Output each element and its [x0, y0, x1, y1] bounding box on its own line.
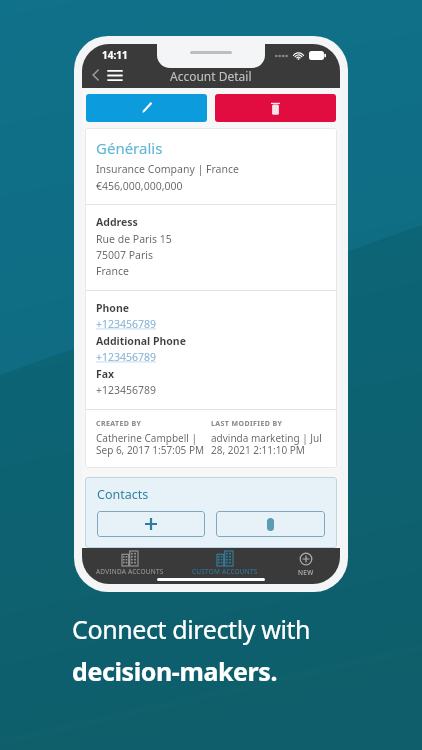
staticText: Account Detail [170, 68, 252, 84]
staticText: Connect directly with [72, 612, 311, 646]
staticText: €456,000,000,000 [96, 179, 183, 193]
staticText: advinda marketing | Jul 28, 2021 2:11:10… [211, 431, 326, 457]
button[interactable]: Add contact [97, 511, 205, 537]
staticText: CREATED BY [96, 419, 142, 429]
staticText: CUSTOM ACCOUNTS [192, 567, 258, 576]
staticText: +123456789 [96, 383, 157, 397]
staticText: Catherine Campbell | Sep 6, 2017 1:57:05… [96, 431, 205, 457]
button[interactable]: +123456789 [96, 317, 157, 331]
button[interactable]: New [272, 548, 340, 584]
button[interactable]: Back [86, 65, 106, 85]
button[interactable]: Edit [86, 94, 207, 122]
staticText: France [96, 264, 129, 278]
staticText: Fax [96, 367, 115, 381]
staticText: +123456789 [96, 350, 157, 364]
staticText: Phone [96, 301, 130, 315]
staticText: NEW [298, 568, 314, 577]
button[interactable]: Delete [215, 94, 336, 122]
staticText: Contacts [97, 486, 149, 503]
staticText: Address [96, 215, 138, 229]
button[interactable]: Attach [216, 511, 325, 537]
button[interactable]: ADVINDA ACCOUNTS [82, 548, 177, 584]
staticText: 75007 Paris [96, 248, 154, 262]
staticText: Rue de Paris 15 [96, 232, 172, 246]
button[interactable]: Menu [104, 64, 126, 86]
staticText: ADVINDA ACCOUNTS [96, 567, 164, 576]
staticText: 14:11 [102, 48, 128, 62]
staticText: Insurance Company | France [96, 162, 239, 176]
staticText: +123456789 [96, 317, 157, 331]
button[interactable]: +123456789 [96, 350, 157, 364]
staticText: decision-makers. [72, 654, 278, 688]
staticText: Additional Phone [96, 334, 186, 348]
button[interactable]: CUSTOM ACCOUNTS [177, 548, 272, 584]
staticText: LAST MODIFIED BY [211, 419, 283, 429]
staticText: Généralis [96, 138, 163, 158]
